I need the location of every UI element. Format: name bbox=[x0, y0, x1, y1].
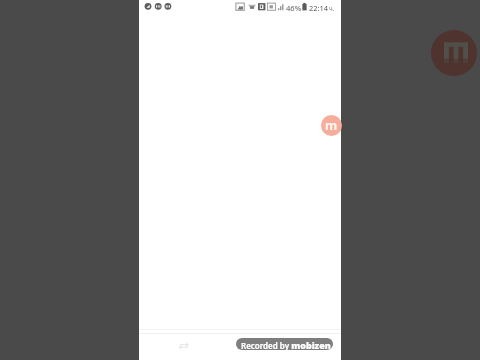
staticText: m bbox=[325, 117, 338, 134]
button[interactable]: Mobizen floating button bbox=[321, 115, 342, 136]
staticText: 22:14 bbox=[309, 3, 328, 13]
button[interactable]: Switch apps bbox=[178, 343, 194, 355]
staticText: ч. bbox=[329, 4, 335, 12]
staticText: 46% bbox=[286, 3, 302, 13]
staticText: Recorded by mobizen bbox=[241, 339, 331, 350]
